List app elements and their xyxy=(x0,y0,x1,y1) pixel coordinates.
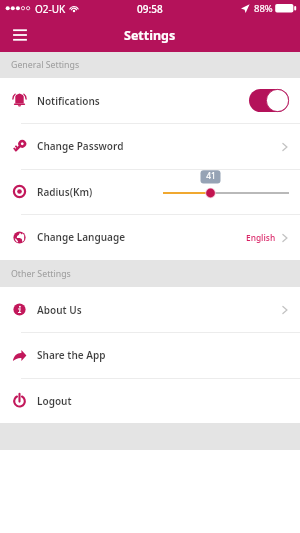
staticText: Other Settings xyxy=(11,268,71,280)
button[interactable]: Logout xyxy=(0,378,300,423)
staticText: O2-UK xyxy=(35,2,66,16)
staticText: 09:58 xyxy=(137,2,163,16)
staticText: General Settings xyxy=(11,59,80,71)
button[interactable]: Share the App xyxy=(0,332,300,378)
button[interactable]: Open navigation menu xyxy=(5,20,35,50)
staticText: About Us xyxy=(37,303,82,317)
button[interactable]: About Us xyxy=(0,287,300,332)
staticText: Logout xyxy=(37,394,72,408)
staticText: Share the App xyxy=(37,348,106,362)
staticText: Notifications xyxy=(37,94,100,108)
button[interactable]: Change Password xyxy=(0,123,300,169)
staticText: Change Password xyxy=(37,139,124,153)
staticText: Settings xyxy=(124,27,176,44)
button[interactable]: Notifications xyxy=(0,78,300,123)
button[interactable]: Notifications toggle xyxy=(249,89,289,112)
button[interactable]: Change Language xyxy=(0,214,300,260)
staticText: 88% xyxy=(254,2,273,15)
staticText: English xyxy=(246,232,276,243)
staticText: Radius(Km) xyxy=(37,185,93,199)
staticText: Change Language xyxy=(37,230,125,244)
staticText: 41 xyxy=(201,170,221,182)
button[interactable]: Radius(Km) xyxy=(0,169,300,214)
